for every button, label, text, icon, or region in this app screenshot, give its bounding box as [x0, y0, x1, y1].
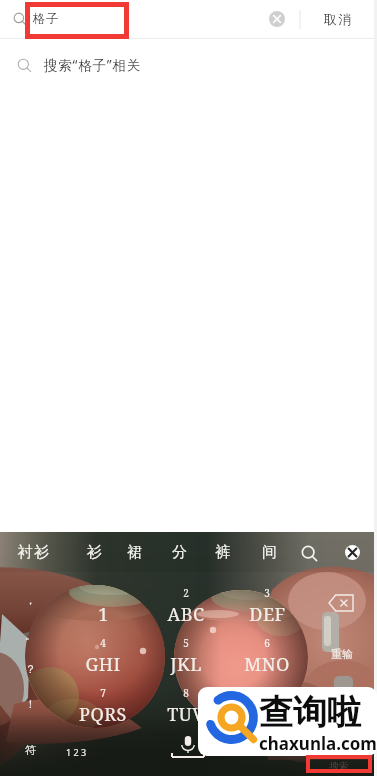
staticText: 7: [100, 686, 106, 700]
staticText: 2: [183, 586, 189, 600]
button[interactable]: 裙: [120, 538, 150, 566]
staticText: DEF: [249, 602, 286, 627]
button[interactable]: ？: [8, 656, 52, 682]
button[interactable]: 重输: [316, 643, 368, 665]
staticText: ，: [25, 593, 36, 607]
button[interactable]: 裤: [208, 538, 238, 566]
button[interactable]: 分: [165, 538, 195, 566]
staticText: 符: [25, 743, 36, 757]
staticText: 格子: [33, 11, 59, 27]
button[interactable]: 衫: [80, 538, 110, 566]
staticText: chaxunla.com: [259, 732, 377, 755]
button[interactable]: 搜索“格子”相关: [0, 46, 377, 84]
button[interactable]: 7 PQRS: [63, 683, 143, 733]
button[interactable]: 衬衫: [9, 538, 57, 566]
staticText: 。: [25, 628, 36, 642]
button[interactable]: 2 ABC: [146, 583, 226, 633]
button[interactable]: 5 JKL: [146, 633, 226, 683]
staticText: 裤: [215, 543, 232, 562]
button[interactable]: 9 WXYZ: [227, 683, 307, 733]
staticText: JKL: [170, 652, 202, 677]
button[interactable]: Hide keyboard: [338, 538, 367, 567]
staticText: 搜索: [329, 760, 349, 773]
staticText: 重输: [331, 647, 353, 661]
button[interactable]: 符: [10, 739, 50, 761]
staticText: ？: [25, 662, 36, 676]
staticText: 6: [264, 636, 270, 650]
button[interactable]: Backspace: [319, 589, 363, 617]
button[interactable]: 8 TUV: [146, 683, 226, 733]
staticText: WXYZ: [240, 702, 295, 727]
staticText: 4: [100, 636, 106, 650]
button[interactable]: ，: [8, 587, 52, 613]
staticText: 分: [172, 543, 189, 562]
staticText: 衬衫: [17, 543, 50, 562]
button[interactable]: Clear text: [263, 5, 291, 33]
staticText: ABC: [167, 602, 205, 627]
staticText: 裙: [127, 543, 144, 562]
button[interactable]: 取消: [301, 0, 377, 38]
button[interactable]: 4 GHI: [63, 633, 143, 683]
staticText: GHI: [85, 652, 121, 677]
button[interactable]: Voice input: [158, 732, 218, 764]
staticText: 1: [98, 602, 109, 627]
button[interactable]: 6 MNO: [227, 633, 307, 683]
staticText: 8: [183, 686, 189, 700]
staticText: 5: [183, 636, 189, 650]
staticText: 搜索“格子”相关: [44, 56, 142, 74]
button[interactable]: 1 2 3: [50, 742, 102, 762]
button[interactable]: 。: [8, 622, 52, 648]
button[interactable]: 3 DEF: [227, 583, 307, 633]
button[interactable]: 搜索: [313, 757, 365, 775]
staticText: ！: [25, 697, 36, 711]
staticText: 1 2 3: [66, 746, 87, 758]
staticText: 间: [262, 543, 279, 562]
button[interactable]: Search: [294, 538, 324, 568]
staticText: 9: [264, 686, 270, 700]
staticText: 查询啦: [259, 691, 361, 734]
staticText: 取消: [324, 11, 354, 27]
staticText: TUV: [167, 702, 205, 727]
button[interactable]: 间: [255, 538, 285, 566]
staticText: 衫: [87, 543, 104, 562]
button[interactable]: ！: [8, 691, 52, 717]
staticText: 3: [264, 586, 270, 600]
staticText: MNO: [244, 652, 290, 677]
staticText: PQRS: [79, 702, 127, 727]
button[interactable]: 1: [63, 583, 143, 633]
